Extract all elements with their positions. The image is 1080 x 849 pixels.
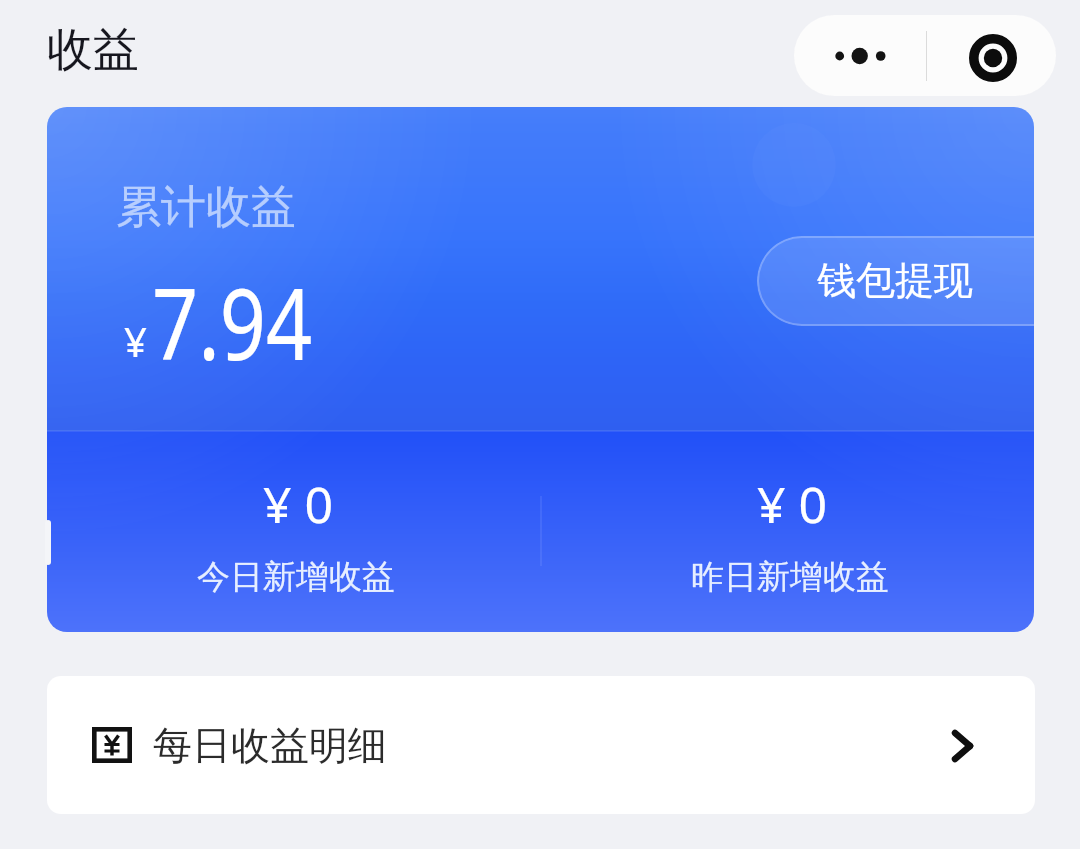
staticText: 7.94 [152, 254, 313, 389]
button[interactable]: 每日收益明细 [47, 676, 1035, 814]
button[interactable]: Close mini program [926, 15, 1056, 96]
button[interactable]: 今日新增收益 [166, 556, 426, 606]
staticText: ¥ [124, 314, 147, 368]
staticText: 收益 [47, 21, 139, 79]
button[interactable]: 昨日新增收益 [660, 556, 920, 606]
button[interactable]: 钱包提现 [757, 236, 1034, 326]
staticText: 今日新增收益 [197, 556, 395, 598]
button[interactable]: Side panel handle [45, 520, 51, 565]
staticText: 钱包提现 [817, 256, 973, 305]
button[interactable]: More options [794, 15, 926, 96]
staticText: ¥ 0 [263, 470, 334, 530]
staticText: 累计收益 [116, 179, 296, 236]
staticText: 每日收益明细 [153, 721, 387, 770]
staticText: 昨日新增收益 [691, 556, 889, 598]
staticText: ¥ 0 [757, 470, 828, 530]
